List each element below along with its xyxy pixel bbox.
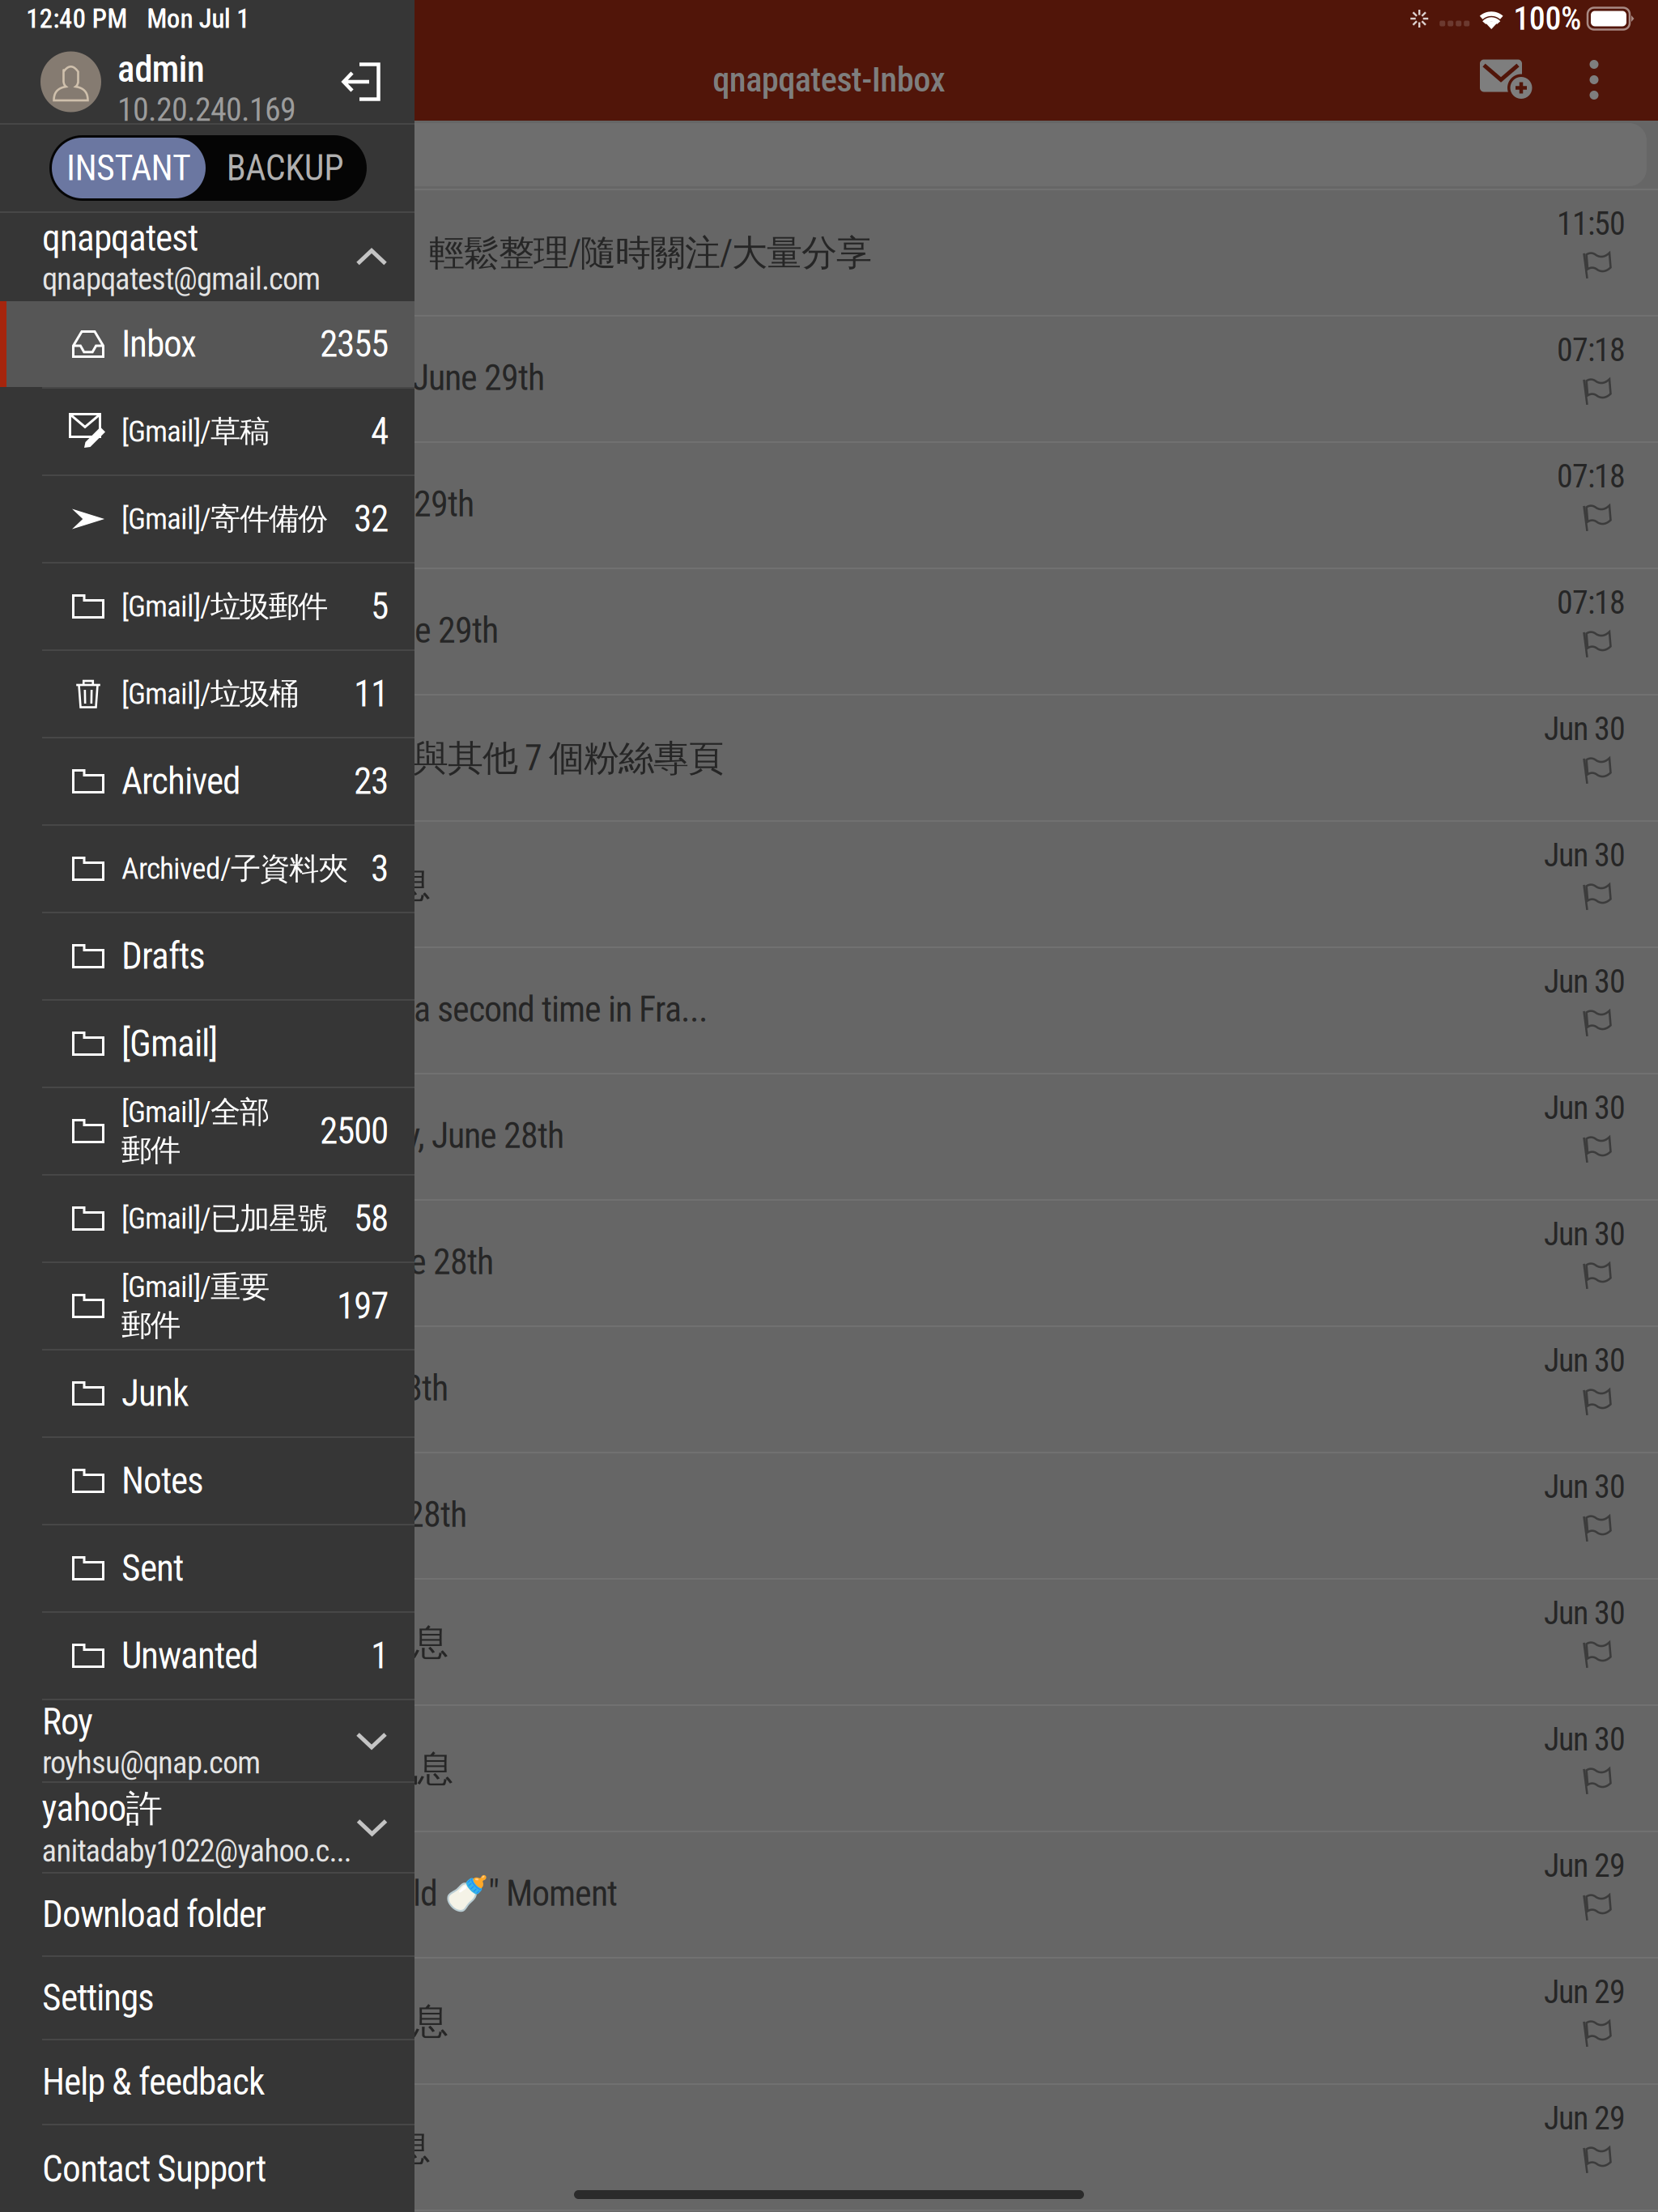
staticText: Top stories for Saturday, June 28th — [32, 1241, 494, 1283]
staticText: 3 — [371, 847, 389, 890]
staticText: Jun 29 — [1544, 1973, 1626, 2011]
button[interactable]: Archived/子資料夾 — [0, 826, 414, 912]
staticText: [Gmail]/垃圾郵件 — [121, 587, 328, 625]
button[interactable]: [Gmail]/重要 郵件 — [0, 1263, 414, 1349]
staticText: Jun 30 — [1544, 1594, 1626, 1632]
staticText: [Gmail]/全部 郵件 — [121, 1093, 270, 1169]
staticText: Junk — [121, 1372, 189, 1415]
button[interactable]: [Gmail]/草稿 — [0, 389, 414, 474]
staticText: Roy — [42, 1701, 93, 1744]
button[interactable]: Inbox — [0, 301, 414, 387]
button[interactable]: Top stories for Sunday, June 29th — [0, 443, 1658, 569]
button[interactable]: More options — [1578, 60, 1610, 100]
staticText: 1 — [371, 1634, 389, 1677]
button[interactable]: LinkedIn 傳送了一則新訊息 — [0, 2085, 1658, 2211]
button[interactable]: Notes — [0, 1438, 414, 1524]
button[interactable]: Junk — [0, 1351, 414, 1436]
button[interactable]: Compose — [1480, 60, 1533, 100]
button[interactable]: Instagram 傳送了一則新訊息 — [0, 1706, 1658, 1832]
staticText: 58 — [354, 1197, 389, 1240]
button[interactable]: Contact Support — [0, 2125, 414, 2212]
button[interactable]: The couple officially wed for a second t… — [0, 948, 1658, 1074]
staticText: [Gmail]/重要 郵件 — [121, 1268, 270, 1344]
staticText: Download folder — [42, 1893, 266, 1936]
staticText: Your weekly summary, June 28th — [32, 1494, 467, 1536]
staticText: 197 — [337, 1284, 389, 1327]
staticText: INSTANT — [66, 147, 191, 189]
staticText: Jun 29 — [1544, 2099, 1626, 2137]
staticText: Briefing for Saturday, June 28th — [32, 1368, 449, 1409]
button[interactable]: Your daily digest for Sunday, June 29th — [0, 317, 1658, 443]
button[interactable]: [Gmail]/垃圾桶 — [0, 651, 414, 737]
staticText: 32 — [354, 497, 389, 540]
staticText: 12:40 PM — [26, 3, 127, 34]
button[interactable]: Your weekly summary, June 28th — [0, 1453, 1658, 1580]
staticText: Notes — [121, 1459, 204, 1502]
staticText: Jun 30 — [1544, 1468, 1626, 1506]
button[interactable]: Daily briefing for Sunday, June 29th — [0, 569, 1658, 696]
button[interactable]: Facebook 傳送了一則新訊息 — [0, 1959, 1658, 2085]
button[interactable]: qnapqatest — [0, 213, 414, 301]
staticText: 07:18 — [1557, 457, 1626, 495]
button[interactable]: [Gmail]/寄件備份 — [0, 476, 414, 562]
staticText: Inbox — [121, 323, 197, 366]
button[interactable]: [Gmail] — [0, 1001, 414, 1087]
staticText: 07:18 — [1557, 584, 1626, 622]
button[interactable]: Your daily digest for Saturday, June 28t… — [0, 1074, 1658, 1201]
staticText: BACKUP — [227, 147, 344, 189]
button[interactable]: Yahoo奇摩新聞精選系列。輕鬆整理/隨時關注/大量分享 — [0, 190, 1658, 317]
staticText: Help & feedback — [42, 2061, 265, 2104]
button[interactable]: Help & feedback — [0, 2040, 414, 2124]
staticText: [Gmail]/垃圾桶 — [121, 675, 299, 713]
staticText: Sent — [121, 1547, 184, 1590]
staticText: [Gmail] — [121, 1022, 218, 1065]
staticText: Unwanted — [121, 1634, 258, 1677]
button[interactable]: Sent — [0, 1525, 414, 1611]
staticText: Top stories for Sunday, June 29th — [32, 483, 474, 525]
button[interactable]: Roy — [0, 1700, 414, 1781]
button[interactable]: INSTANT — [52, 138, 206, 198]
staticText: Instagram 傳送了一則新訊息 — [32, 1746, 453, 1791]
staticText: Contact Support — [42, 2148, 266, 2191]
button[interactable]: [Gmail]/全部 郵件 — [0, 1088, 414, 1174]
staticText: They welcomed their first child 🍼" Momen… — [32, 1873, 618, 1915]
button[interactable]: Briefing for Saturday, June 28th — [0, 1327, 1658, 1453]
staticText: admin — [117, 48, 205, 91]
button[interactable]: Drafts — [0, 913, 414, 999]
staticText: Jun 30 — [1544, 836, 1626, 874]
staticText: royhsu@qnap.com — [42, 1744, 261, 1781]
staticText: qnapqatest-Inbox — [713, 60, 945, 100]
staticText: 11 — [354, 672, 389, 715]
staticText: Jun 30 — [1544, 710, 1626, 748]
staticText: 23 — [354, 760, 389, 803]
staticText: 10.20.240.169 — [117, 91, 296, 129]
staticText: Jun 30 — [1544, 963, 1626, 1001]
staticText: Jun 30 — [1544, 1342, 1626, 1380]
staticText: 2500 — [320, 1110, 389, 1153]
staticText: Your daily digest for Saturday, June 28t… — [32, 1115, 564, 1157]
staticText: Settings — [42, 1976, 155, 2019]
staticText: 2355 — [320, 323, 389, 366]
staticText: 11:50 — [1557, 205, 1626, 243]
button[interactable]: Settings — [0, 1957, 414, 2039]
button[interactable]: [Gmail]/已加星號 — [0, 1176, 414, 1261]
button[interactable]: Unwanted — [0, 1613, 414, 1699]
button[interactable]: LinkedIn 傳送了一則新訊息 — [0, 822, 1658, 948]
staticText: Archived/子資料夾 — [121, 850, 348, 888]
button[interactable]: Facebook 通知：你的朋友與其他 7 個粉絲專頁 — [0, 696, 1658, 822]
button[interactable]: Download folder — [0, 1874, 414, 1955]
button[interactable]: [Gmail]/垃圾郵件 — [0, 564, 414, 649]
staticText: Yahoo奇摩新聞精選系列。輕鬆整理/隨時關注/大量分享 — [32, 231, 872, 276]
button[interactable]: They welcomed their first child 🍼" Momen… — [0, 1832, 1658, 1959]
button[interactable]: yahoo許 — [0, 1783, 414, 1872]
staticText: 07:18 — [1557, 331, 1626, 369]
button[interactable]: Top stories for Saturday, June 28th — [0, 1201, 1658, 1327]
staticText: Drafts — [121, 935, 206, 978]
button[interactable]: admin — [0, 40, 414, 123]
button[interactable]: BACKUP — [206, 138, 364, 198]
staticText: Facebook 傳送了一則新訊息 — [32, 1620, 449, 1665]
button[interactable]: Facebook 傳送了一則新訊息 — [0, 1580, 1658, 1706]
staticText: 4 — [371, 410, 389, 453]
button[interactable]: Archived — [0, 738, 414, 824]
staticText: LinkedIn 傳送了一則新訊息 — [32, 862, 431, 907]
